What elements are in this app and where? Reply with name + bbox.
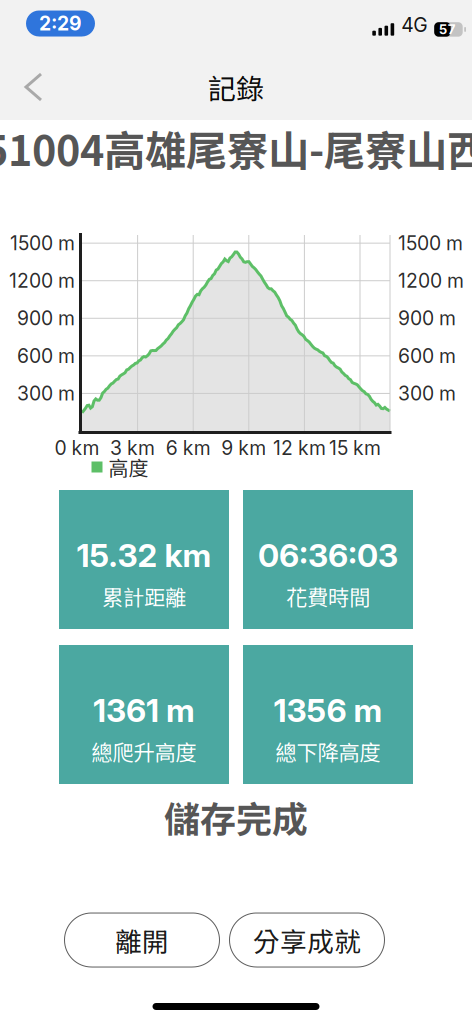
- staticText: 6 km: [166, 436, 211, 460]
- staticText: 15.32 km: [76, 536, 211, 575]
- staticText: 1500 m: [398, 231, 463, 255]
- staticText: 12 km: [273, 436, 326, 460]
- staticText: 300 m: [398, 382, 456, 405]
- staticText: 2:29: [39, 12, 82, 35]
- staticText: 300 m: [17, 382, 75, 405]
- staticText: 600 m: [17, 344, 75, 368]
- staticText: 9 km: [221, 436, 266, 460]
- staticText: 離開: [115, 921, 169, 959]
- staticText: 51004高雄尾寮山-尾寮山西: [0, 118, 472, 178]
- button[interactable]: 離開: [64, 913, 219, 967]
- button[interactable]: 分享成就: [229, 913, 384, 967]
- staticText: 06:36:03: [258, 536, 398, 575]
- staticText: 1361 m: [93, 691, 195, 730]
- staticText: 1200 m: [398, 269, 464, 292]
- staticText: 600 m: [398, 344, 456, 368]
- staticText: 高度: [108, 452, 148, 481]
- staticText: 0 km: [54, 436, 99, 460]
- staticText: 900 m: [398, 307, 456, 330]
- staticText: 4G: [401, 13, 427, 37]
- staticText: 1500 m: [10, 231, 75, 255]
- staticText: 總下降高度: [275, 736, 380, 767]
- staticText: 15 km: [329, 436, 381, 460]
- button[interactable]: Back: [0, 55, 55, 119]
- staticText: 花費時間: [286, 581, 370, 612]
- staticText: 3 km: [110, 436, 155, 460]
- staticText: 1200 m: [9, 269, 75, 292]
- staticText: 1356 m: [273, 691, 382, 730]
- staticText: 分享成就: [253, 921, 361, 959]
- staticText: 900 m: [17, 307, 75, 330]
- staticText: 57: [439, 21, 456, 37]
- staticText: 儲存完成: [164, 791, 308, 843]
- staticText: 記錄: [208, 67, 264, 107]
- staticText: 累計距離: [102, 581, 186, 612]
- staticText: 總爬升高度: [91, 736, 196, 767]
